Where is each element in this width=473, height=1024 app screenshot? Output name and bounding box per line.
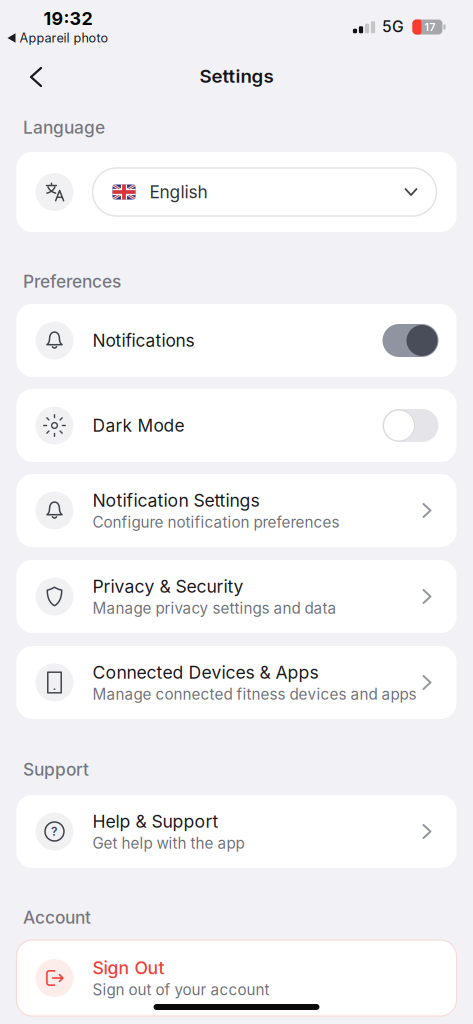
button[interactable]: ? xyxy=(16,795,456,868)
button[interactable]: Notifications xyxy=(16,304,456,377)
staticText: Privacy & Security xyxy=(92,576,243,597)
button[interactable]: Notification Settings xyxy=(16,474,456,547)
staticText: 5G xyxy=(382,17,404,36)
button[interactable]: Connected Devices & Apps xyxy=(16,646,456,719)
staticText: Sign Out xyxy=(92,957,164,978)
staticText: Account xyxy=(23,907,91,928)
staticText: Manage connected fitness devices and app… xyxy=(92,685,416,703)
staticText: Dark Mode xyxy=(92,415,184,436)
button[interactable]: Language: English xyxy=(92,168,436,216)
staticText: Get help with the app xyxy=(92,834,244,852)
staticText: Appareil photo xyxy=(19,30,108,46)
staticText: ? xyxy=(51,824,58,839)
staticText: Language xyxy=(23,117,105,138)
button[interactable]: Privacy & Security xyxy=(16,560,456,633)
staticText: Manage privacy settings and data xyxy=(92,599,336,617)
staticText: Connected Devices & Apps xyxy=(92,662,318,683)
staticText: Configure notification preferences xyxy=(92,513,339,531)
button[interactable]: Sign Out xyxy=(16,940,456,1016)
button[interactable]: Back xyxy=(19,60,53,94)
staticText: Support xyxy=(23,759,89,780)
button[interactable]: Dark Mode xyxy=(16,389,456,462)
staticText: 19:32 xyxy=(43,8,92,29)
staticText: Notification Settings xyxy=(92,490,259,511)
staticText: Notifications xyxy=(92,330,194,351)
staticText: 17 xyxy=(424,20,435,33)
staticText: Preferences xyxy=(23,271,121,292)
staticText: English xyxy=(149,181,207,202)
staticText: Sign out of your account xyxy=(92,980,269,999)
staticText: Settings xyxy=(199,65,273,87)
staticText: Help & Support xyxy=(92,811,218,832)
